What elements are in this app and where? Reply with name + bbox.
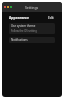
staticText: Edit xyxy=(48,16,54,20)
button[interactable]: Notifications xyxy=(9,37,55,43)
button[interactable]: Use system theme xyxy=(9,23,55,34)
staticText: Appearance xyxy=(9,15,30,20)
staticText: Settings xyxy=(25,5,39,10)
staticText: Use system theme xyxy=(11,24,36,28)
staticText: Follow the OS setting xyxy=(11,29,37,33)
staticText: Notifications xyxy=(11,38,28,42)
